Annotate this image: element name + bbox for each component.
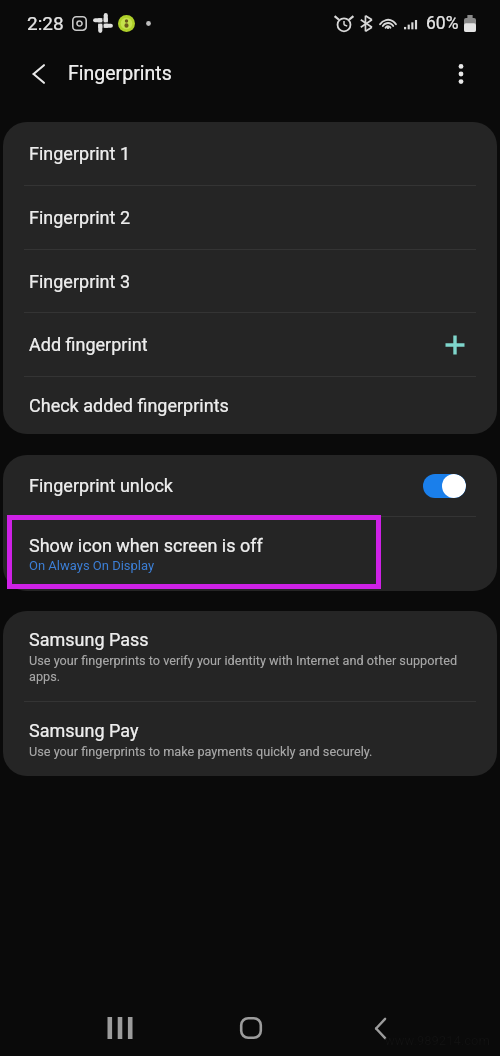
button[interactable]: Samsung Pass [3,611,497,701]
staticText: Fingerprint 2 [29,207,131,228]
button[interactable]: Add fingerprint [3,313,497,376]
staticText: Fingerprints [68,62,172,85]
button[interactable]: Fingerprint 1 [3,122,497,185]
staticText: Show icon when screen is off [29,535,263,556]
staticText: Use your fingerprints to verify your ide… [29,653,467,684]
button[interactable]: Fingerprint unlock [423,474,466,498]
button[interactable]: Fingerprint 2 [3,186,497,249]
staticText: Fingerprint 1 [29,143,131,164]
staticText: On Always On Display [29,558,155,573]
staticText: www.989214.com [385,1033,490,1048]
staticText: Samsung Pay [29,720,139,741]
button[interactable]: More options [445,58,477,90]
button[interactable]: Back [344,1000,416,1056]
staticText: Use your fingerprints to make payments q… [29,744,373,759]
staticText: Check added fingerprints [29,395,229,416]
button[interactable]: Fingerprint 3 [3,250,497,312]
staticText: Fingerprint 3 [29,271,131,292]
staticText: Fingerprint unlock [29,475,173,496]
button[interactable]: Samsung Pay [3,702,497,776]
button[interactable]: Check added fingerprints [3,377,497,434]
staticText: Add fingerprint [29,334,148,355]
button[interactable]: Fingerprint unlock [3,455,497,516]
button[interactable]: Recent apps [84,1000,156,1056]
staticText: Samsung Pass [29,629,149,650]
staticText: 2:28 [27,12,64,34]
button[interactable]: Home [215,1000,287,1056]
button[interactable]: Show icon when screen is off [3,517,497,591]
button[interactable]: Navigate up [20,56,56,92]
staticText: 60% [426,13,459,34]
